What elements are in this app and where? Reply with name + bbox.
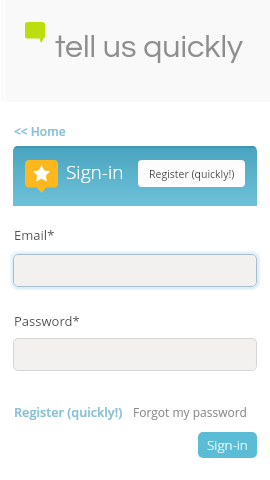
button[interactable]: Forgot my password (133, 404, 247, 420)
button[interactable] (13, 338, 257, 371)
button[interactable]: Sign-in (198, 432, 257, 458)
button[interactable]: Register (quickly!) (138, 160, 245, 187)
staticText: Email* (14, 226, 55, 244)
button[interactable] (13, 254, 257, 287)
button[interactable]: Register (quickly!) (14, 403, 123, 420)
staticText: Forgot my password (133, 404, 247, 420)
staticText: Password* (14, 312, 80, 330)
staticText: << Home (14, 123, 66, 139)
staticText: tell us quickly (55, 31, 243, 64)
staticText: Sign-in (207, 436, 248, 454)
staticText: Register (quickly!) (149, 167, 235, 181)
staticText: Register (quickly!) (14, 403, 123, 420)
staticText: Sign-in (66, 159, 124, 185)
button[interactable]: << Home (14, 123, 66, 139)
